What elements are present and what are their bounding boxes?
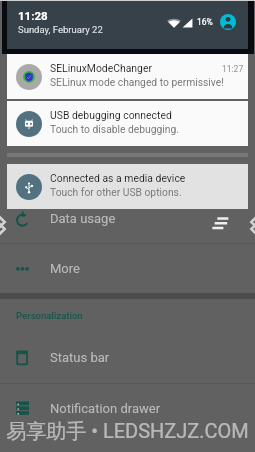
staticText: Status bar <box>50 350 110 365</box>
staticText: SELinux mode changed to permissive! <box>50 76 224 88</box>
staticText: 易享助手 • LEDSHZJZ.COM <box>6 419 249 444</box>
staticText: 16% <box>197 17 213 27</box>
staticText: 11:28 <box>18 9 48 22</box>
button[interactable]: SELinuxModeChanger <box>7 54 248 99</box>
staticText: USB debugging connected <box>50 109 172 121</box>
button[interactable]: Data usage <box>0 206 255 232</box>
button[interactable]: Connected as a media device <box>7 164 248 209</box>
staticText: 11:27 <box>222 64 244 74</box>
staticText: Sunday, February 22 <box>18 24 103 35</box>
staticText: Personalization <box>16 310 83 321</box>
staticText: Notification drawer <box>50 401 161 416</box>
staticText: Touch for other USB options. <box>50 186 182 198</box>
button[interactable]: Status bar <box>0 345 255 371</box>
staticText: Data usage <box>50 211 116 226</box>
button[interactable]: Account <box>220 14 236 30</box>
staticText: More <box>50 261 80 276</box>
button[interactable]: Notification drawer <box>0 396 255 422</box>
button[interactable]: More <box>0 256 255 282</box>
staticText: Touch to disable debugging. <box>50 123 180 135</box>
button[interactable]: Data usage chart <box>212 215 231 234</box>
staticText: SELinuxModeChanger <box>50 62 152 74</box>
button[interactable]: USB debugging connected <box>7 101 248 146</box>
staticText: Connected as a media device <box>50 172 186 184</box>
